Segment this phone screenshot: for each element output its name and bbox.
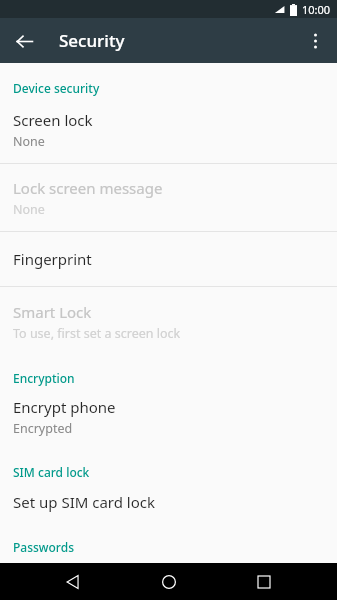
- staticText: SIM card lock: [13, 464, 90, 480]
- button[interactable]: Fingerprint: [0, 232, 337, 286]
- button: Lock screen message: [0, 164, 337, 231]
- staticText: Lock screen message: [13, 178, 163, 198]
- staticText: Security: [59, 29, 125, 52]
- staticText: Passwords: [13, 539, 74, 555]
- staticText: Fingerprint: [13, 249, 92, 269]
- staticText: None: [13, 201, 45, 218]
- button[interactable]: Set up SIM card lock: [0, 480, 337, 524]
- staticText: Encrypted: [13, 420, 73, 437]
- button[interactable]: More options: [299, 25, 331, 57]
- button[interactable]: Back: [51, 563, 95, 600]
- staticText: 10:00: [302, 2, 331, 17]
- button[interactable]: Home: [147, 563, 191, 600]
- button[interactable]: Back: [8, 25, 40, 57]
- staticText: Encryption: [13, 370, 75, 386]
- staticText: None: [13, 133, 45, 150]
- staticText: Screen lock: [13, 110, 93, 130]
- staticText: Smart Lock: [13, 302, 92, 322]
- button[interactable]: Recent apps: [242, 563, 286, 600]
- staticText: Set up SIM card lock: [13, 492, 156, 512]
- staticText: Device security: [13, 80, 100, 96]
- button[interactable]: Screen lock: [0, 96, 337, 163]
- button[interactable]: Encrypt phone: [0, 386, 337, 449]
- button: Smart Lock: [0, 287, 337, 356]
- staticText: To use, first set a screen lock: [13, 325, 181, 342]
- staticText: Encrypt phone: [13, 397, 116, 417]
